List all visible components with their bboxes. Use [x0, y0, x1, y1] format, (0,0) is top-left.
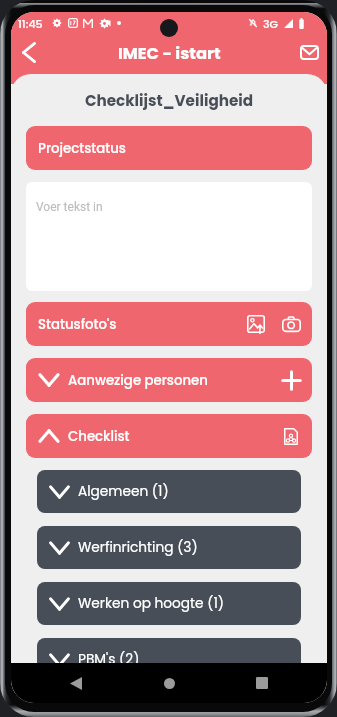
- staticText: Voer tekst in: [36, 200, 103, 214]
- button[interactable]: PBM's (2): [37, 638, 301, 681]
- staticText: Statusfoto's: [38, 315, 117, 334]
- button[interactable]: Checklist: [26, 414, 312, 458]
- staticText: Algemeen (1): [78, 482, 169, 501]
- staticText: Aanwezige personen: [68, 371, 208, 390]
- staticText: Projectstatus: [38, 139, 126, 158]
- button[interactable]: Recents: [247, 668, 277, 698]
- button[interactable]: Algemeen (1): [37, 470, 301, 513]
- button[interactable]: Projectstatus: [26, 126, 312, 170]
- button[interactable]: Home: [154, 668, 184, 698]
- button[interactable]: Export PDF: [277, 422, 305, 450]
- button[interactable]: Upload photo: [242, 310, 270, 338]
- staticText: Werfinrichting (3): [78, 538, 198, 557]
- button[interactable]: Camera: [277, 310, 305, 338]
- button[interactable]: Add person: [277, 366, 305, 394]
- staticText: 3G: [263, 16, 279, 31]
- button[interactable]: Mail: [293, 36, 325, 68]
- button[interactable]: Werfinrichting (3): [37, 526, 301, 569]
- button[interactable]: Back: [13, 36, 45, 68]
- button[interactable]: Statusfoto's: [26, 302, 312, 346]
- staticText: Checklist: [68, 427, 130, 446]
- staticText: Checklijst_Veiligheid: [26, 90, 312, 111]
- button[interactable]: Werken op hoogte (1): [37, 582, 301, 625]
- staticText: Werken op hoogte (1): [78, 594, 225, 613]
- staticText: IMEC - istart: [118, 42, 221, 65]
- button[interactable]: Back: [61, 668, 91, 698]
- button[interactable]: Aanwezige personen: [26, 358, 312, 402]
- staticText: PBM's (2): [78, 650, 140, 669]
- staticText: 11:45: [18, 16, 43, 31]
- button[interactable]: Voer tekst in: [26, 182, 312, 291]
